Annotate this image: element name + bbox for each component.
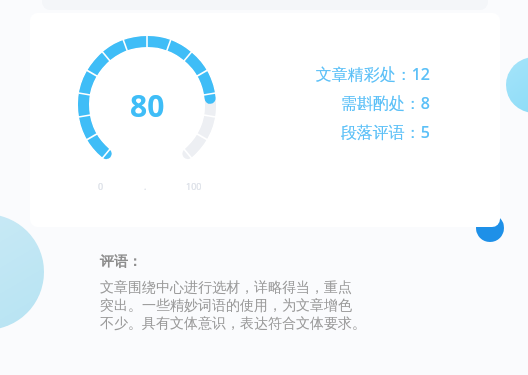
staticText: 文章精彩处：12	[315, 63, 430, 85]
staticText: 文章围绕中心进行选材，详略得当，重点	[100, 279, 352, 297]
staticText: 评语：	[100, 253, 142, 271]
staticText: 需斟酌处：8	[340, 92, 430, 114]
staticText: 80	[130, 85, 165, 126]
button[interactable]: 80	[30, 13, 500, 227]
staticText: 段落评语：5	[340, 121, 430, 143]
staticText: 不少。具有文体意识，表达符合文体要求。	[100, 315, 366, 333]
staticText: .	[144, 180, 147, 192]
staticText: 突出。一些精妙词语的使用，为文章增色	[100, 297, 352, 315]
staticText: 100	[186, 180, 202, 192]
staticText: 0	[98, 180, 104, 192]
